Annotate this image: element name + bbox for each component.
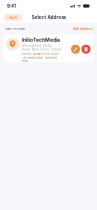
staticText: Ahmedabad, Ambli — [22, 44, 52, 47]
staticText: 380058 — [45, 56, 57, 59]
button[interactable]: Back — [4, 14, 22, 21]
staticText: Phone Number — [22, 52, 44, 56]
staticText: +91 8980 000 000 — [22, 56, 43, 63]
staticText: Pin Code — [45, 52, 59, 56]
staticText: 9:41 — [7, 3, 16, 9]
staticText: Road, Near Iskon Temple — [22, 48, 62, 51]
button[interactable]: Edit address — [71, 45, 80, 54]
staticText: Select Address — [31, 15, 65, 20]
staticText: Back — [9, 15, 17, 20]
button[interactable]: Add Address — [73, 27, 93, 31]
staticText: Saved Addresses — [4, 27, 24, 30]
button[interactable]: Delete address — [81, 45, 90, 54]
staticText: InitioTechMedia — [22, 37, 60, 43]
staticText: Add Address — [73, 27, 93, 31]
